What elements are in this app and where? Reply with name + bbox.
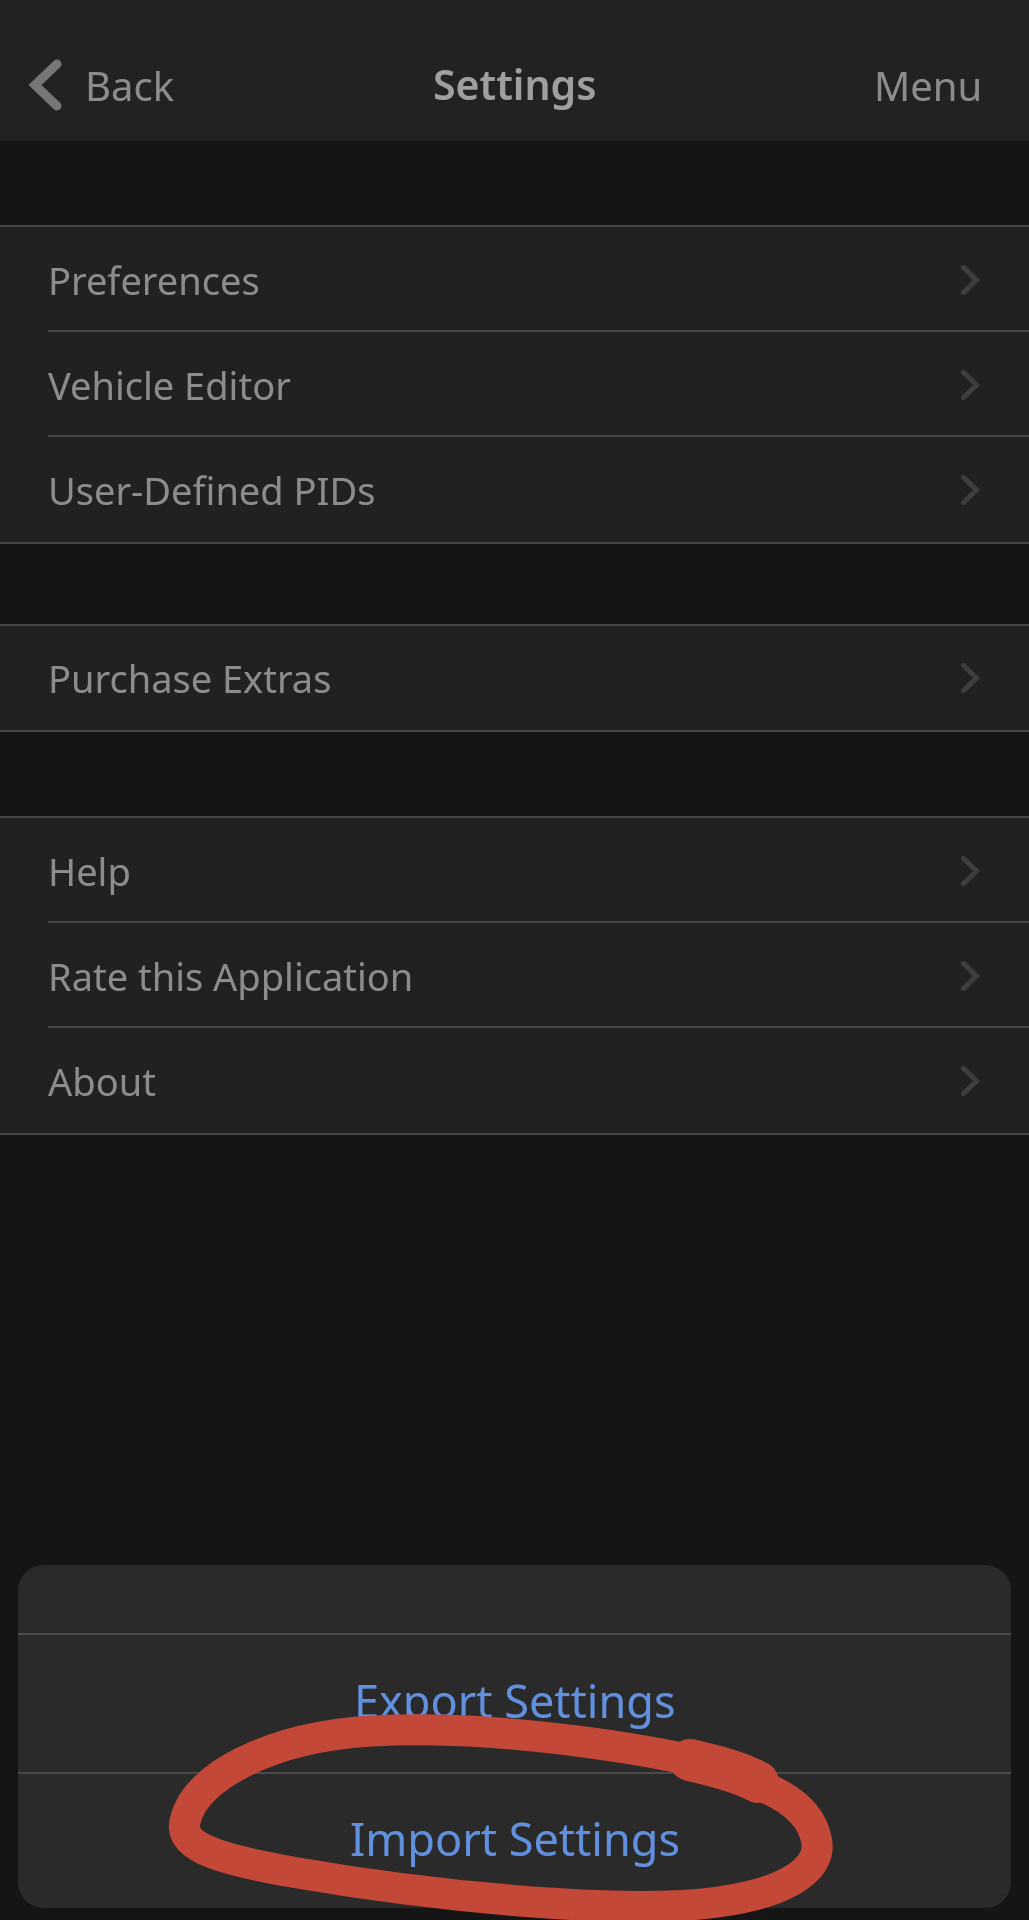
staticText: Vehicle Editor <box>48 359 291 411</box>
button[interactable]: Back <box>0 48 190 122</box>
button[interactable]: Purchase Extras <box>0 626 1029 730</box>
button[interactable]: Menu <box>834 44 1029 126</box>
button[interactable]: User-Defined PIDs <box>0 437 1029 542</box>
staticText: About <box>48 1055 156 1107</box>
staticText: User-Defined PIDs <box>48 464 376 516</box>
button[interactable]: Export Settings <box>18 1635 1011 1772</box>
staticText: Rate this Application <box>48 950 414 1002</box>
button[interactable]: Vehicle Editor <box>0 332 1029 437</box>
staticText: Import Settings <box>350 1808 680 1869</box>
staticText: Preferences <box>48 254 260 306</box>
staticText: Back <box>85 58 174 112</box>
staticText: Purchase Extras <box>48 652 332 704</box>
staticText: Settings <box>433 56 597 112</box>
staticText: Export Settings <box>354 1670 676 1731</box>
button[interactable]: Rate this Application <box>0 923 1029 1028</box>
button[interactable]: Help <box>0 818 1029 923</box>
button[interactable]: About <box>0 1028 1029 1133</box>
staticText: Help <box>48 845 131 897</box>
staticText: Menu <box>874 58 983 112</box>
button[interactable]: Import Settings <box>18 1774 1011 1908</box>
button[interactable]: Preferences <box>0 227 1029 332</box>
